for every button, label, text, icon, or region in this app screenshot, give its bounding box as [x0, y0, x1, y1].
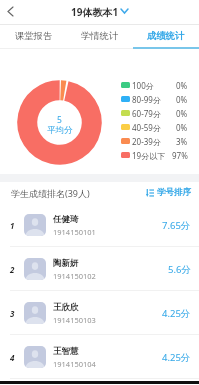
staticText: 4	[10, 352, 15, 363]
staticText: 1914150101	[53, 227, 96, 237]
button[interactable]: 19体教本1	[71, 5, 128, 19]
staticText: 王智慧	[53, 346, 79, 357]
staticText: 平均分	[47, 125, 73, 136]
button[interactable]: 3	[0, 291, 199, 335]
staticText: 5.6分	[168, 263, 191, 276]
staticText: 1914150102	[53, 271, 96, 281]
staticText: 19体教本1	[71, 5, 119, 19]
staticText: 4.25分	[162, 307, 191, 320]
staticText: 4.25分	[162, 351, 191, 364]
button[interactable]: 4	[0, 335, 199, 379]
staticText: 80-99分	[132, 94, 161, 105]
staticText: 1914150104	[53, 359, 96, 369]
staticText: 课堂报告	[15, 30, 53, 42]
button[interactable]: 成绩统计	[133, 25, 199, 49]
staticText: 2	[10, 264, 15, 275]
button[interactable]: Back	[0, 1, 24, 25]
staticText: 成绩统计	[147, 30, 185, 42]
staticText: 19分以下	[132, 150, 166, 161]
staticText: 60-79分	[132, 108, 161, 119]
button[interactable]: 课堂报告	[0, 25, 67, 49]
staticText: 20-39分	[132, 136, 161, 147]
staticText: 学情统计	[81, 30, 119, 42]
staticText: 学生成绩排名(39人)	[11, 187, 90, 199]
staticText: 任健琦	[53, 214, 79, 225]
staticText: 0%	[176, 94, 188, 105]
staticText: 王欣欣	[53, 302, 79, 313]
staticText: 5	[57, 114, 62, 126]
staticText: 7.65分	[162, 219, 191, 232]
staticText: 3	[10, 308, 15, 319]
staticText: 学号排序	[157, 187, 191, 198]
staticText: 97%	[172, 150, 188, 161]
button[interactable]: 1	[0, 203, 199, 247]
staticText: 0%	[176, 80, 188, 91]
button[interactable]: 学号排序	[146, 187, 191, 198]
staticText: 3%	[176, 136, 188, 147]
staticText: 1	[10, 220, 15, 231]
staticText: 0%	[176, 108, 188, 119]
button[interactable]: 2	[0, 247, 199, 291]
staticText: 100分	[132, 80, 154, 91]
staticText: 40-59分	[132, 122, 161, 133]
staticText: 0%	[176, 122, 188, 133]
staticText: 陶新妍	[53, 258, 79, 269]
button[interactable]: 学情统计	[67, 25, 133, 49]
staticText: 1914150103	[53, 315, 96, 325]
